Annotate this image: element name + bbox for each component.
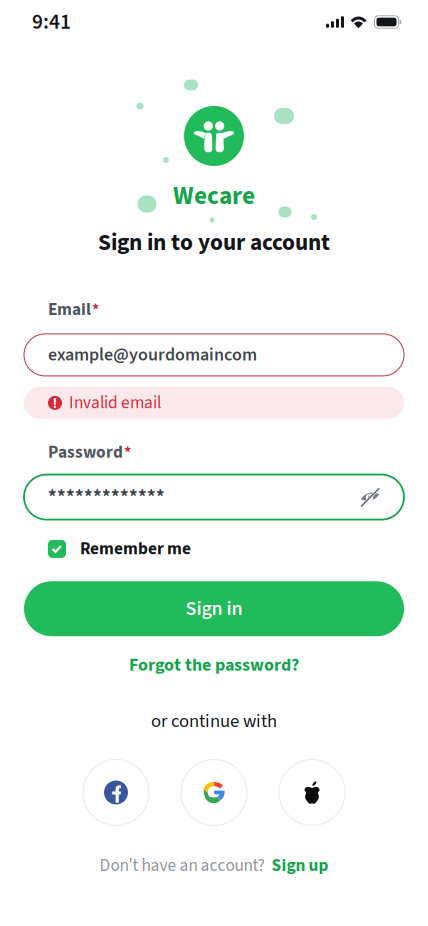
staticText: * bbox=[92, 298, 99, 321]
button[interactable]: Sign in with Google bbox=[181, 759, 247, 825]
button[interactable]: Forgot the password? bbox=[105, 636, 323, 682]
staticText: example@yourdomaincom bbox=[48, 342, 257, 368]
button[interactable]: Sign in bbox=[0, 567, 428, 636]
staticText: Invalid email bbox=[69, 391, 161, 415]
staticText: Sign up bbox=[271, 853, 328, 878]
staticText: Sign in to your account bbox=[98, 226, 330, 259]
staticText: ************* bbox=[48, 484, 165, 510]
staticText: Wecare bbox=[173, 178, 255, 214]
button[interactable]: Sign up bbox=[271, 853, 328, 878]
staticText: ! bbox=[53, 394, 57, 412]
staticText: 9:41 bbox=[32, 7, 71, 37]
staticText: or continue with bbox=[151, 708, 277, 734]
staticText: Remember me bbox=[80, 537, 191, 561]
staticText: Don't have an account? bbox=[99, 853, 264, 878]
button[interactable]: Sign in with Facebook bbox=[83, 759, 149, 825]
staticText: Password bbox=[48, 440, 123, 465]
staticText: Email bbox=[48, 297, 91, 322]
staticText: Sign in bbox=[185, 594, 242, 623]
staticText: Forgot the password? bbox=[129, 652, 299, 678]
button[interactable]: Remember me bbox=[0, 520, 428, 567]
button[interactable]: Sign in with Apple bbox=[279, 759, 345, 825]
staticText: * bbox=[124, 441, 131, 464]
